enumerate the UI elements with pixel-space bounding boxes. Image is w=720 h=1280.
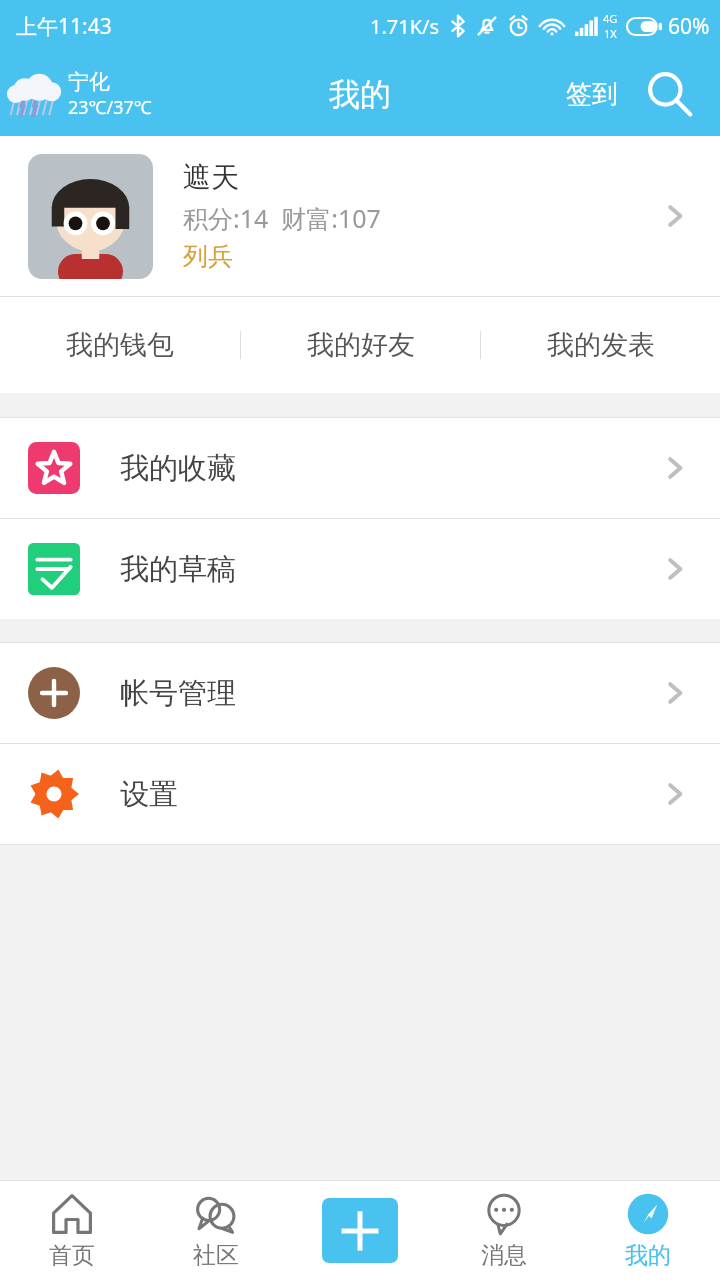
staticText: 帐号管理 [120, 675, 658, 712]
staticText: 我的钱包 [66, 328, 174, 362]
staticText: 列兵 [183, 241, 233, 272]
button[interactable]: 我的发表 [481, 297, 720, 393]
staticText: 设置 [120, 776, 658, 813]
button[interactable]: 消息 [432, 1181, 576, 1280]
staticText: 我的 [625, 1241, 671, 1270]
button[interactable]: Search [638, 63, 700, 125]
button[interactable]: 宁化 [8, 66, 152, 122]
staticText: 我的 [329, 75, 391, 114]
staticText: 积分:14 财富:107 [183, 201, 381, 235]
staticText: 遮天 [183, 160, 239, 195]
button[interactable]: 我的收藏 [0, 418, 720, 518]
staticText: 1X [604, 26, 617, 41]
staticText: 60% [668, 12, 710, 41]
staticText: 我的收藏 [120, 450, 658, 487]
staticText: 上午11:43 [16, 12, 112, 41]
button[interactable]: 我的草稿 [0, 519, 720, 619]
staticText: 首页 [49, 1241, 95, 1270]
button[interactable]: 我的好友 [241, 297, 480, 393]
button[interactable]: 遮天 [0, 136, 720, 296]
staticText: 我的草稿 [120, 551, 658, 588]
button[interactable]: 我的钱包 [0, 297, 240, 393]
staticText: 宁化 [68, 69, 110, 95]
button[interactable]: 帐号管理 [0, 643, 720, 743]
button[interactable]: Post [288, 1181, 432, 1280]
button[interactable]: 设置 [0, 744, 720, 844]
staticText: 1.71K/s [370, 13, 440, 40]
staticText: 社区 [193, 1241, 239, 1270]
staticText: 4G [603, 11, 618, 26]
button[interactable]: 签到 [566, 78, 618, 111]
staticText: 23℃/37℃ [68, 95, 152, 120]
staticText: 消息 [481, 1241, 527, 1270]
button[interactable]: 我的 [576, 1181, 720, 1280]
button[interactable]: 首页 [0, 1181, 144, 1280]
button[interactable]: 社区 [144, 1181, 288, 1280]
staticText: 我的发表 [547, 328, 655, 362]
staticText: 我的好友 [307, 328, 415, 362]
